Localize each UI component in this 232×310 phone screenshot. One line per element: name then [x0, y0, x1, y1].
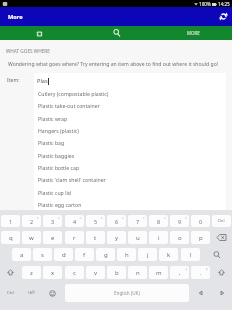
button[interactable]: k — [159, 248, 178, 261]
button[interactable]: p — [191, 231, 210, 244]
staticText: Plastic egg carton — [38, 201, 82, 208]
button[interactable]: Plastic bottle cap — [34, 161, 226, 173]
button[interactable]: a — [12, 248, 31, 261]
button[interactable]: h — [117, 248, 136, 261]
staticText: v — [94, 269, 98, 277]
button[interactable]: Shift — [212, 266, 231, 279]
staticText: ° — [185, 216, 187, 221]
button[interactable]: x — [43, 266, 62, 279]
staticText: c — [73, 269, 76, 277]
staticText: Plastic 'clam shell' container — [38, 176, 106, 183]
button[interactable]: Plastic cup lid — [34, 186, 226, 198]
button[interactable]: Plastic take-out container — [34, 99, 226, 111]
button[interactable]: , — [170, 266, 189, 279]
button[interactable]: u — [128, 231, 147, 244]
button[interactable]: Ctrl — [1, 284, 20, 302]
staticText: 3 — [51, 218, 55, 225]
button[interactable]: Emoji — [43, 284, 62, 302]
button[interactable]: c — [65, 266, 84, 279]
button[interactable]: Hangers (plastic) — [34, 124, 226, 136]
button[interactable]: Search — [78, 26, 155, 40]
staticText: Hangers (plastic) — [38, 127, 79, 134]
staticText: 4 — [73, 218, 77, 225]
button[interactable]: Plastic baggies — [34, 149, 226, 161]
staticText: ° — [122, 216, 124, 221]
button[interactable]: Search — [202, 248, 231, 261]
button[interactable]: Plastic bag — [34, 136, 226, 148]
button[interactable]: Plastic wrap — [34, 112, 226, 124]
button[interactable]: 5 — [86, 215, 105, 227]
button[interactable]: Backspace — [212, 231, 231, 244]
button[interactable]: Plastic egg carton — [34, 198, 226, 210]
button[interactable]: f — [75, 248, 94, 261]
staticText: u — [136, 234, 140, 242]
staticText: p — [199, 234, 203, 242]
staticText: ° — [80, 216, 82, 221]
staticText: Plastic bottle cap — [38, 164, 80, 171]
button[interactable]: w — [22, 231, 41, 244]
staticText: f — [83, 251, 86, 259]
staticText: WHAT GOES WHERE — [6, 48, 50, 54]
button[interactable]: b — [107, 266, 126, 279]
button[interactable]: Shift — [1, 266, 20, 279]
staticText: ° — [164, 216, 166, 221]
button[interactable]: t — [86, 231, 105, 244]
button[interactable]: n — [128, 266, 147, 279]
button[interactable]: MORE — [155, 26, 232, 40]
button[interactable]: o — [170, 231, 189, 244]
button[interactable]: d — [54, 248, 73, 261]
button[interactable]: Del — [212, 215, 231, 227]
button[interactable]: e — [43, 231, 62, 244]
staticText: Plastic take-out container — [38, 102, 100, 109]
button[interactable]: v — [86, 266, 105, 279]
staticText: . — [200, 269, 202, 277]
button[interactable]: l — [181, 248, 200, 261]
button[interactable]: 9 — [170, 215, 189, 227]
staticText: 9 — [178, 218, 182, 225]
staticText: Plastic wrap — [38, 115, 68, 122]
button[interactable]: z — [22, 266, 41, 279]
staticText: e — [51, 234, 55, 242]
staticText: m — [156, 269, 162, 277]
button[interactable]: Plastic 'clam shell' container — [34, 173, 226, 185]
button[interactable]: 6 — [107, 215, 126, 227]
staticText: 14:25 — [218, 1, 230, 7]
button[interactable]: 1 — [1, 215, 20, 227]
staticText: k — [167, 251, 171, 259]
staticText: ° — [37, 216, 39, 221]
button[interactable]: s — [33, 248, 52, 261]
button[interactable]: 8 — [149, 215, 168, 227]
button[interactable]: 4 — [65, 215, 84, 227]
staticText: j — [147, 251, 149, 259]
staticText: Plastic bag — [38, 139, 65, 146]
staticText: l — [190, 251, 192, 259]
staticText: ° — [143, 216, 145, 221]
button[interactable]: Move cursor left — [191, 284, 210, 302]
staticText: 6 — [115, 218, 119, 225]
staticText: y — [115, 234, 119, 242]
button[interactable]: q — [1, 231, 20, 244]
button[interactable]: Bins — [0, 26, 78, 40]
staticText: 100% — [199, 1, 211, 7]
staticText: 5 — [94, 218, 98, 225]
button[interactable]: r — [65, 231, 84, 244]
button[interactable]: . — [191, 266, 210, 279]
button[interactable]: 7 — [128, 215, 147, 227]
button[interactable]: 2 — [22, 215, 41, 227]
staticText: MORE — [187, 30, 200, 36]
button[interactable]: Cutlery (compostable plastic) — [34, 87, 226, 99]
button[interactable]: m — [149, 266, 168, 279]
button[interactable]: i — [149, 231, 168, 244]
button[interactable]: 0 — [191, 215, 210, 227]
staticText: i — [158, 234, 160, 242]
button[interactable]: Move cursor right — [212, 284, 231, 302]
button[interactable]: y — [107, 231, 126, 244]
button[interactable]: !#© — [22, 284, 41, 302]
button[interactable]: Refresh — [214, 7, 232, 26]
button[interactable]: 3 — [43, 215, 62, 227]
staticText: Item: — [7, 77, 20, 84]
button[interactable]: g — [96, 248, 115, 261]
staticText: Ctrl — [7, 290, 14, 296]
button[interactable]: j — [138, 248, 157, 261]
button[interactable]: English (UK) — [65, 284, 189, 302]
